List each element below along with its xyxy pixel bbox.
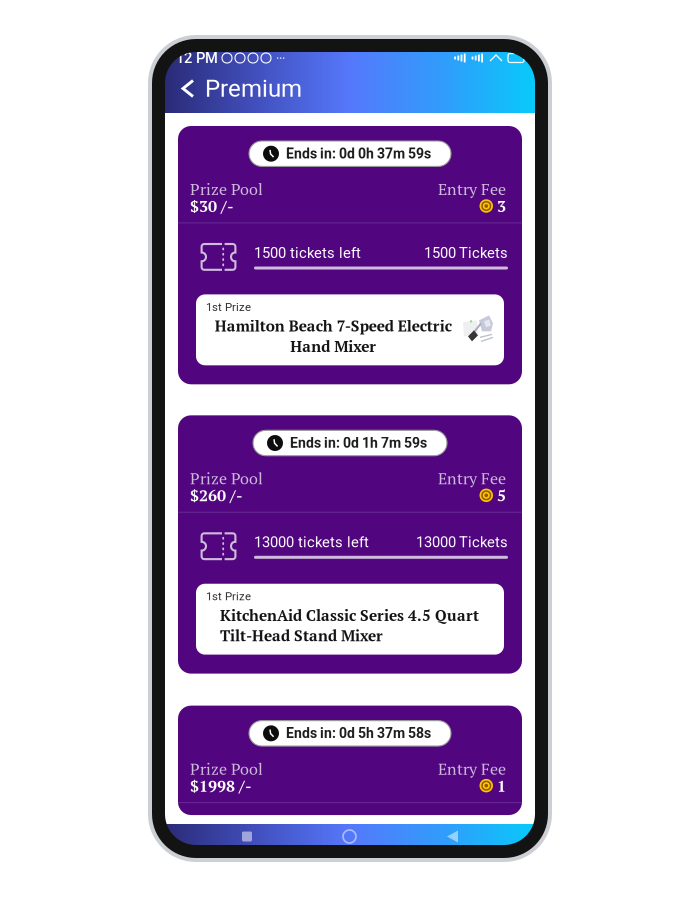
staticText: 1500 Tickets — [424, 244, 508, 261]
staticText: 1500 tickets left — [254, 244, 361, 261]
staticText: Ends in: 0d 1h 7m 59s — [290, 435, 427, 451]
staticText: 3 — [497, 195, 506, 217]
staticText: $260 /- — [190, 485, 243, 506]
staticText: Prize Pool — [190, 468, 263, 489]
staticText: KitchenAid Classic Series 4.5 Quart Tilt… — [220, 605, 479, 646]
staticText: Ends in: 0d 5h 37m 58s — [286, 725, 431, 741]
staticText: Premium — [205, 74, 302, 102]
staticText: 1 — [497, 775, 506, 796]
staticText: Prize Pool — [190, 178, 263, 200]
staticText: 12 PM — [176, 49, 218, 67]
staticText: ··· — [276, 50, 285, 66]
staticText: 5 — [497, 485, 506, 506]
button[interactable]: Back — [433, 826, 472, 842]
staticText: Hamilton Beach 7-Speed Electric Hand Mix… — [214, 316, 451, 356]
button[interactable]: Home — [329, 826, 370, 843]
staticText: 13000 tickets left — [254, 534, 369, 551]
staticText: $30 /- — [190, 195, 234, 217]
staticText: 1st Prize — [206, 300, 251, 314]
staticText: $1998 /- — [190, 775, 252, 796]
button[interactable]: Back — [165, 64, 205, 113]
staticText: Entry Fee — [438, 178, 506, 200]
staticText: 1st Prize — [206, 590, 251, 603]
staticText: Ends in: 0d 0h 37m 59s — [286, 145, 431, 162]
staticText: 13000 Tickets — [416, 534, 508, 551]
staticText: Entry Fee — [438, 468, 506, 489]
staticText: Entry Fee — [438, 758, 506, 779]
staticText: Prize Pool — [190, 758, 263, 779]
button[interactable]: Recents — [228, 827, 266, 841]
